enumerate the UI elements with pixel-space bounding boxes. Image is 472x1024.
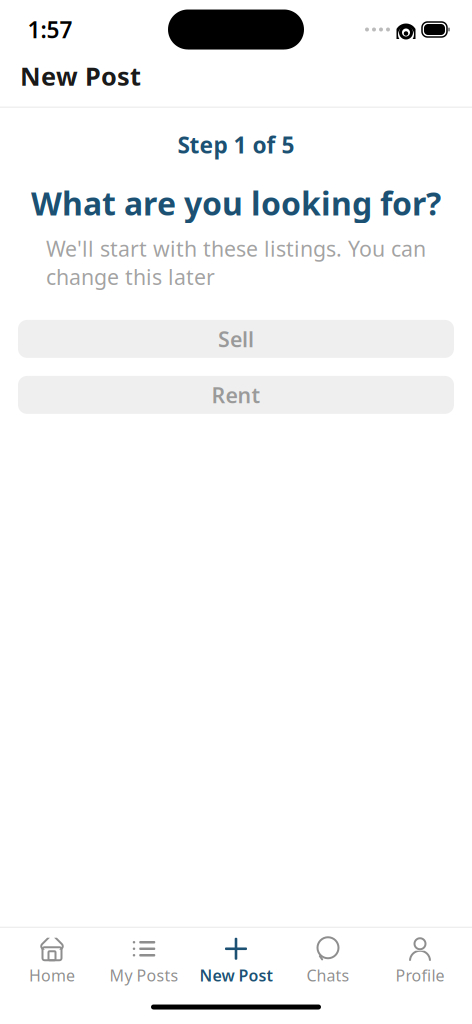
staticText: New Post <box>20 59 141 93</box>
button[interactable]: Sell <box>18 320 454 358</box>
button[interactable]: Chats <box>282 928 374 990</box>
staticText: Rent <box>211 381 260 409</box>
button[interactable]: Home <box>6 928 98 990</box>
staticText: New Post <box>199 965 272 986</box>
button[interactable]: Profile <box>374 928 466 990</box>
staticText: We'll start with these listings. You can… <box>46 234 426 291</box>
staticText: Sell <box>218 325 254 353</box>
staticText: Step 1 of 5 <box>177 130 294 160</box>
button[interactable]: Rent <box>18 376 454 414</box>
staticText: Home <box>29 965 75 986</box>
staticText: Chats <box>306 965 349 986</box>
staticText: My Posts <box>109 965 178 986</box>
staticText: 1:57 <box>27 14 72 44</box>
button[interactable]: New Post <box>190 928 282 990</box>
button[interactable]: My Posts <box>98 928 190 990</box>
staticText: What are you looking for? <box>31 182 441 224</box>
staticText: Profile <box>395 965 444 986</box>
